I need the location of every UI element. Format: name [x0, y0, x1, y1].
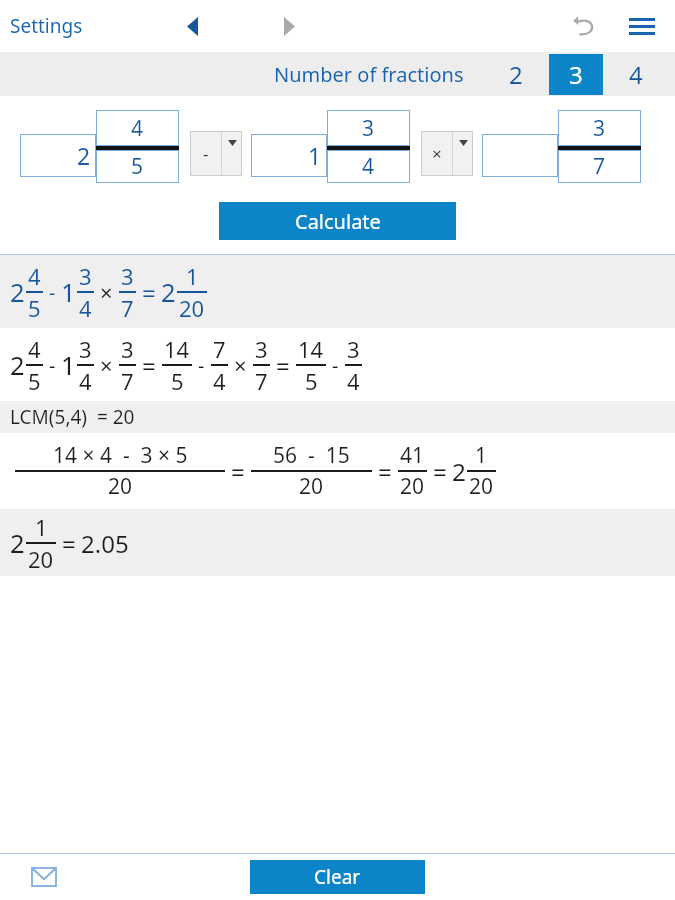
staticText: 3 [121, 261, 134, 291]
staticText: - [332, 352, 339, 379]
staticText: 4 [79, 366, 92, 396]
staticText: 7 [121, 366, 134, 396]
staticText: 5 [131, 152, 144, 181]
staticText: 20 [400, 472, 425, 501]
staticText: 1 [61, 275, 76, 310]
staticText: 7 [121, 293, 134, 323]
button[interactable]: 3 [558, 110, 641, 146]
staticText: 7 [213, 334, 226, 364]
button[interactable]: Menu [621, 5, 663, 47]
staticText: 3 [121, 334, 134, 364]
staticText: = [231, 455, 245, 488]
button[interactable]: Operator × [421, 131, 473, 176]
staticText: 5 [28, 293, 41, 323]
staticText: 2 [10, 526, 25, 561]
button[interactable]: 3 [327, 110, 410, 146]
button[interactable]: 4 [327, 150, 410, 183]
staticText: 4 [79, 293, 92, 323]
staticText: 5 [28, 366, 41, 396]
staticText: 20 [179, 293, 205, 323]
staticText: 20 [299, 472, 324, 501]
staticText: - [49, 352, 56, 379]
staticText: 3 [569, 58, 583, 91]
staticText: × [100, 277, 113, 307]
staticText: 14 [298, 334, 324, 364]
staticText: = [378, 455, 392, 488]
staticText: 4 [213, 366, 226, 396]
staticText: = [142, 349, 156, 382]
staticText: 2 [509, 58, 523, 91]
button[interactable]: 2 [489, 54, 543, 95]
staticText: 14 [164, 334, 190, 364]
staticText: 3 [255, 334, 268, 364]
button[interactable]: 5 [96, 150, 179, 183]
staticText: 7 [593, 152, 606, 181]
staticText: 41 [400, 441, 425, 470]
button[interactable]: 7 [558, 150, 641, 183]
staticText: 1 [61, 348, 76, 383]
staticText: 20 [469, 472, 494, 501]
staticText: 20 [28, 544, 54, 574]
staticText: 56 - 15 [273, 441, 350, 470]
staticText: 4 [629, 58, 643, 91]
button[interactable]: Next [272, 9, 306, 43]
staticText: = [62, 527, 76, 560]
staticText: Clear [314, 864, 361, 890]
button[interactable]: Calculate [219, 202, 456, 240]
staticText: 2.05 [81, 527, 129, 560]
button[interactable] [482, 134, 558, 177]
button[interactable]: 3 [549, 54, 603, 95]
staticText: × [432, 142, 442, 165]
button[interactable]: Number of fractions [274, 61, 464, 88]
staticText: 3 [79, 334, 92, 364]
staticText: 4 [131, 114, 144, 143]
button[interactable]: 4 [609, 54, 663, 95]
staticText: 5 [305, 366, 318, 396]
staticText: 4 [28, 334, 41, 364]
staticText: - [203, 142, 209, 165]
staticText: 2 [10, 275, 25, 310]
staticText: 1 [308, 140, 322, 171]
staticText: = [276, 349, 290, 382]
staticText: 4 [28, 261, 41, 291]
button[interactable]: 2 [20, 134, 96, 177]
staticText: 1 [475, 441, 488, 470]
staticText: 20 [108, 472, 133, 501]
staticText: - [198, 352, 205, 379]
staticText: 3 [593, 114, 606, 143]
staticText: 1 [186, 261, 199, 291]
staticText: 4 [362, 152, 375, 181]
button[interactable]: Previous [175, 9, 209, 43]
staticText: 4 [347, 366, 360, 396]
staticText: × [100, 350, 113, 380]
staticText: × [234, 350, 247, 380]
staticText: 3 [79, 261, 92, 291]
staticText: 2 [452, 455, 466, 488]
staticText: = [142, 276, 156, 309]
staticText: 1 [35, 512, 48, 542]
button[interactable]: 4 [96, 110, 179, 146]
staticText: 14 × 4 - 3 × 5 [53, 441, 188, 470]
staticText: - [49, 279, 56, 306]
button[interactable]: Operator - [190, 131, 242, 176]
staticText: LCM(5,4) = 20 [10, 404, 135, 430]
button[interactable]: Clear [250, 860, 425, 894]
staticText: Calculate [295, 208, 381, 235]
staticText: 3 [347, 334, 360, 364]
staticText: = [433, 455, 447, 488]
button[interactable]: Settings [0, 5, 91, 47]
button[interactable]: Undo [565, 6, 605, 46]
staticText: 3 [362, 114, 375, 143]
staticText: 7 [255, 366, 268, 396]
staticText: 5 [171, 366, 184, 396]
button[interactable]: Email [24, 857, 64, 897]
staticText: 2 [77, 140, 91, 171]
staticText: 2 [161, 275, 176, 310]
button[interactable]: 1 [251, 134, 327, 177]
staticText: 2 [10, 348, 25, 383]
